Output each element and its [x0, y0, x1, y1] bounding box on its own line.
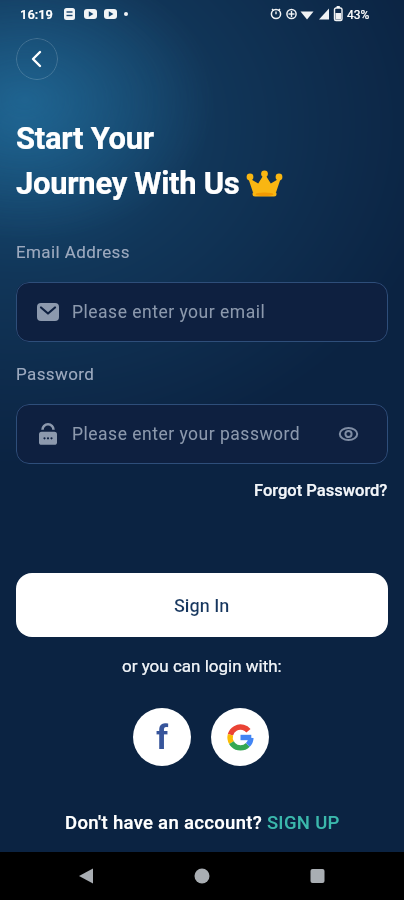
button[interactable]: Please enter your email	[16, 282, 388, 342]
staticText: Please enter your email	[72, 302, 266, 323]
staticText: Start Your	[16, 120, 154, 156]
button[interactable]: Don't have an account? SIGN UP	[65, 812, 340, 834]
staticText: or you can login with:	[122, 656, 282, 676]
staticText: 43%	[347, 8, 370, 22]
staticText: Please enter your password	[72, 424, 301, 445]
button[interactable]	[211, 708, 269, 766]
button[interactable]: Please enter your password	[16, 404, 388, 464]
button[interactable]: Forgot Password?	[254, 481, 388, 500]
button[interactable]: Sign In	[16, 573, 388, 637]
staticText: Email Address	[16, 242, 130, 262]
staticText: f	[156, 717, 169, 757]
staticText: Password	[16, 364, 95, 384]
button[interactable]: f	[133, 708, 191, 766]
staticText: Sign In	[174, 595, 230, 616]
staticText: 16:19	[20, 7, 54, 22]
button[interactable]	[16, 38, 58, 80]
staticText: Journey With Us	[16, 165, 240, 201]
